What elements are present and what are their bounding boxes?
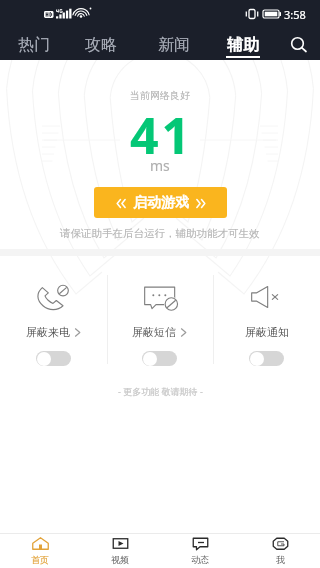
button[interactable]: 辅助 (215, 30, 271, 60)
staticText: 屏蔽来电 (26, 325, 70, 339)
button[interactable]: 屏蔽通知 (249, 351, 284, 366)
button[interactable]: 屏蔽通知 (213, 262, 320, 372)
staticText: 视频 (111, 554, 129, 565)
button[interactable]: 屏蔽来电 (36, 351, 71, 366)
staticText: ms (150, 156, 170, 175)
button[interactable]: 屏蔽短信 (106, 262, 213, 372)
staticText: 我 (276, 554, 285, 565)
staticText: 启动游戏 (133, 194, 189, 212)
button[interactable]: 热门 (6, 30, 62, 60)
staticText: 热门 (18, 35, 50, 55)
button[interactable]: Search (282, 32, 310, 60)
staticText: 3:58 (284, 7, 306, 22)
staticText: 屏蔽通知 (245, 325, 289, 339)
staticText: 首页 (31, 554, 49, 565)
staticText: - 更多功能 敬请期待 - (118, 385, 203, 397)
button[interactable]: 首页 (0, 533, 80, 568)
button[interactable]: 我 (240, 533, 320, 568)
staticText: 当前网络良好 (130, 89, 190, 102)
staticText: 辅助 (227, 35, 259, 55)
button[interactable]: 屏蔽短信 (142, 351, 177, 366)
staticText: 动态 (191, 554, 209, 565)
staticText: 屏蔽短信 (132, 325, 176, 339)
staticText: 新闻 (158, 35, 190, 55)
staticText: 41 (130, 101, 194, 169)
button[interactable]: 攻略 (73, 30, 129, 60)
staticText: 请保证助手在后台运行，辅助功能才可生效 (60, 227, 260, 240)
button[interactable]: 动态 (160, 533, 240, 568)
button[interactable]: 启动游戏 (94, 187, 227, 218)
button[interactable]: 新闻 (146, 30, 202, 60)
button[interactable]: 视频 (80, 533, 160, 568)
button[interactable]: 屏蔽来电 (0, 262, 106, 372)
staticText: 攻略 (85, 35, 117, 55)
